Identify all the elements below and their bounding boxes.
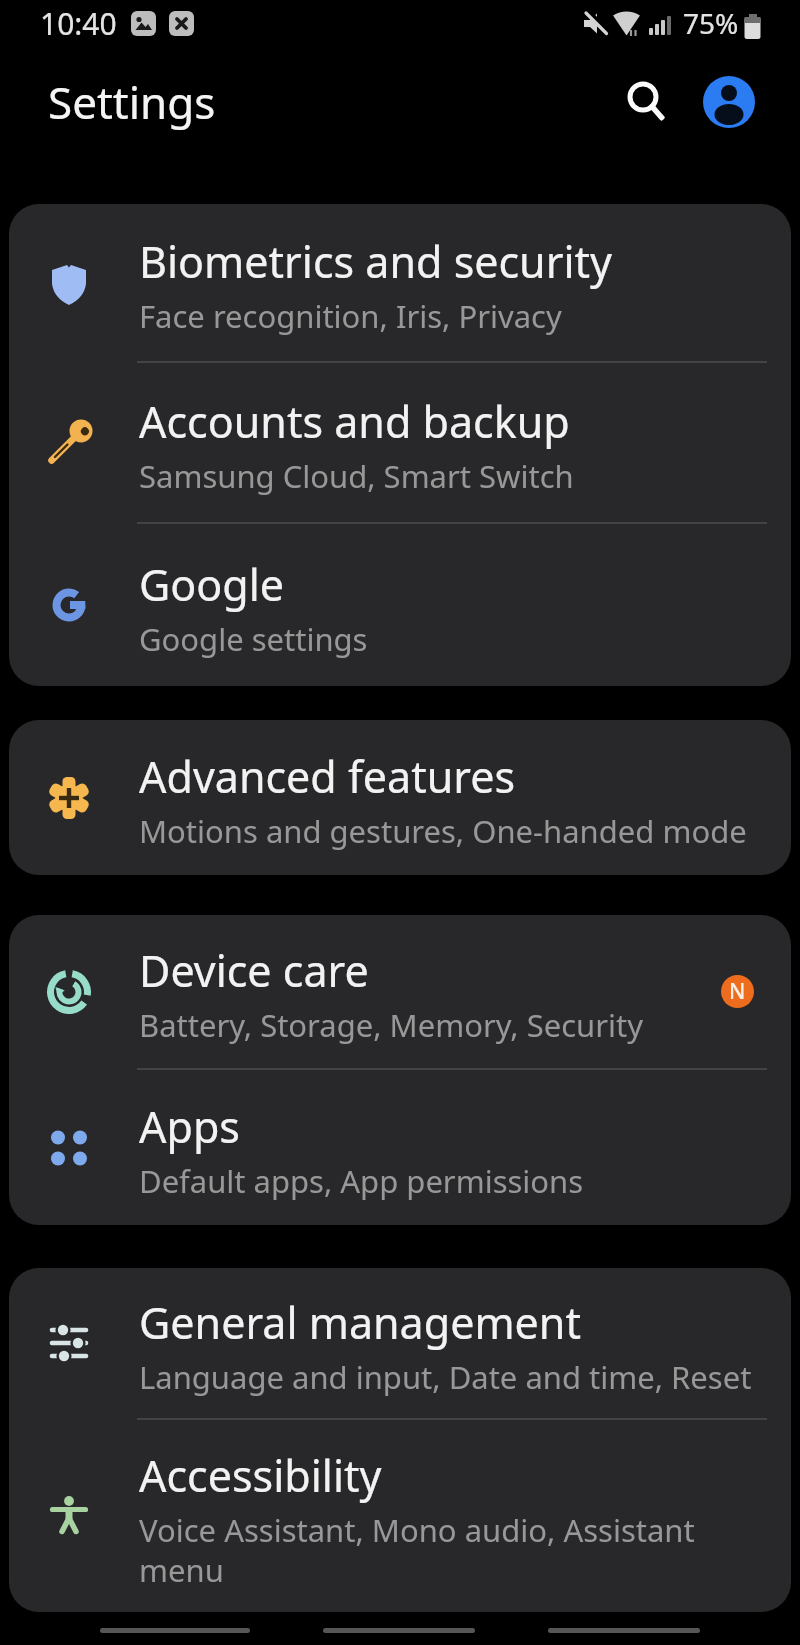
staticText: Battery, Storage, Memory, Security (139, 1004, 644, 1046)
staticText: Google (139, 555, 285, 614)
button[interactable]: General management (9, 1268, 791, 1418)
staticText: Default apps, App permissions (139, 1160, 584, 1202)
staticText: Biometrics and security (139, 232, 612, 291)
button[interactable]: Device care (9, 915, 791, 1068)
button[interactable]: Accessibility (9, 1420, 791, 1612)
button[interactable]: Biometrics and security (9, 204, 791, 361)
staticText: Google settings (139, 618, 368, 660)
staticText: 75% (683, 4, 739, 42)
button[interactable]: Apps (9, 1070, 791, 1225)
button[interactable] (623, 78, 671, 126)
staticText: Face recognition, Iris, Privacy (139, 295, 562, 337)
staticText: General management (139, 1293, 581, 1352)
staticText: Language and input, Date and time, Reset (139, 1356, 752, 1398)
staticText: Accessibility (139, 1446, 382, 1505)
staticText: Device care (139, 941, 369, 1000)
button[interactable]: Google (9, 524, 791, 686)
button[interactable]: Advanced features (9, 720, 791, 875)
staticText: Motions and gestures, One-handed mode (139, 810, 747, 852)
staticText: 10:40 (40, 3, 117, 44)
staticText: Settings (48, 72, 216, 132)
button[interactable]: Accounts and backup (9, 363, 791, 522)
button[interactable] (703, 76, 755, 128)
staticText: Accounts and backup (139, 392, 570, 451)
staticText: Apps (139, 1097, 240, 1156)
staticText: Voice Assistant, Mono audio, Assistant m… (139, 1509, 695, 1591)
staticText: N (729, 977, 746, 1006)
staticText: Samsung Cloud, Smart Switch (139, 455, 574, 497)
staticText: Advanced features (139, 747, 515, 806)
